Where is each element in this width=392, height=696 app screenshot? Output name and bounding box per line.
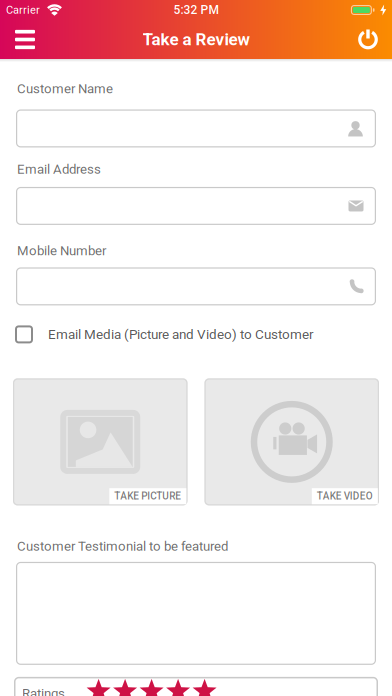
staticText: Carrier	[6, 3, 40, 16]
button[interactable]: Rate 2 stars	[112, 679, 138, 696]
button[interactable]: Rate 3 stars	[139, 679, 164, 696]
staticText: TAKE VIDEO	[317, 490, 373, 502]
button[interactable]: Rate 1 star	[86, 679, 111, 696]
staticText: Email Address	[17, 161, 101, 177]
button[interactable]: Email Media (Picture and Video) to Custo…	[0, 325, 314, 343]
staticText: Customer Name	[17, 81, 113, 96]
button[interactable]: Mobile Number	[0, 267, 392, 305]
button[interactable]: Log out	[357, 28, 392, 50]
staticText: Mobile Number	[17, 243, 106, 258]
button[interactable]: Customer Name	[0, 109, 392, 147]
button[interactable]: Email Address	[0, 187, 392, 225]
button[interactable]: Rate 5 stars	[192, 679, 217, 696]
staticText: 5:32 PM	[173, 3, 218, 17]
button[interactable]: Customer Testimonial to be featured	[0, 562, 392, 665]
button[interactable]: Rate 4 stars	[165, 679, 191, 696]
staticText: Customer Testimonial to be featured	[17, 538, 228, 554]
staticText: Email Media (Picture and Video) to Custo…	[48, 326, 314, 342]
staticText: Ratings	[22, 686, 65, 696]
button[interactable]: Take Video	[204, 378, 379, 505]
button[interactable]: Take Picture	[13, 378, 187, 505]
staticText: Take a Review	[142, 29, 249, 49]
button[interactable]: Menu	[0, 30, 35, 49]
staticText: TAKE PICTURE	[114, 490, 181, 502]
